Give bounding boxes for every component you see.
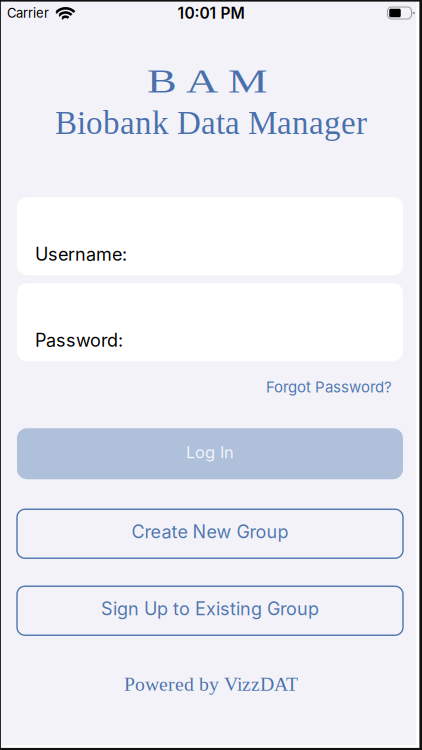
staticText: Password:: [35, 329, 123, 351]
staticText: Log In: [186, 442, 234, 462]
button[interactable]: Log In: [17, 428, 403, 479]
staticText: Create New Group: [131, 521, 288, 543]
staticText: A: [191, 63, 215, 99]
staticText: B: [162, 63, 184, 99]
button[interactable]: Forgot Password?: [266, 378, 392, 396]
staticText: Powered by VizzDAT: [124, 673, 298, 695]
staticText: Carrier: [7, 5, 49, 21]
button[interactable]: Create New Group: [17, 509, 403, 558]
button[interactable]: Sign Up to Existing Group: [17, 586, 403, 635]
staticText: Biobank Data Manager: [55, 104, 367, 141]
staticText: M: [222, 63, 251, 99]
staticText: 10:01 PM: [177, 4, 244, 22]
staticText: Username:: [35, 243, 127, 265]
staticText: Forgot Password?: [266, 378, 392, 396]
staticText: Sign Up to Existing Group: [101, 598, 319, 620]
